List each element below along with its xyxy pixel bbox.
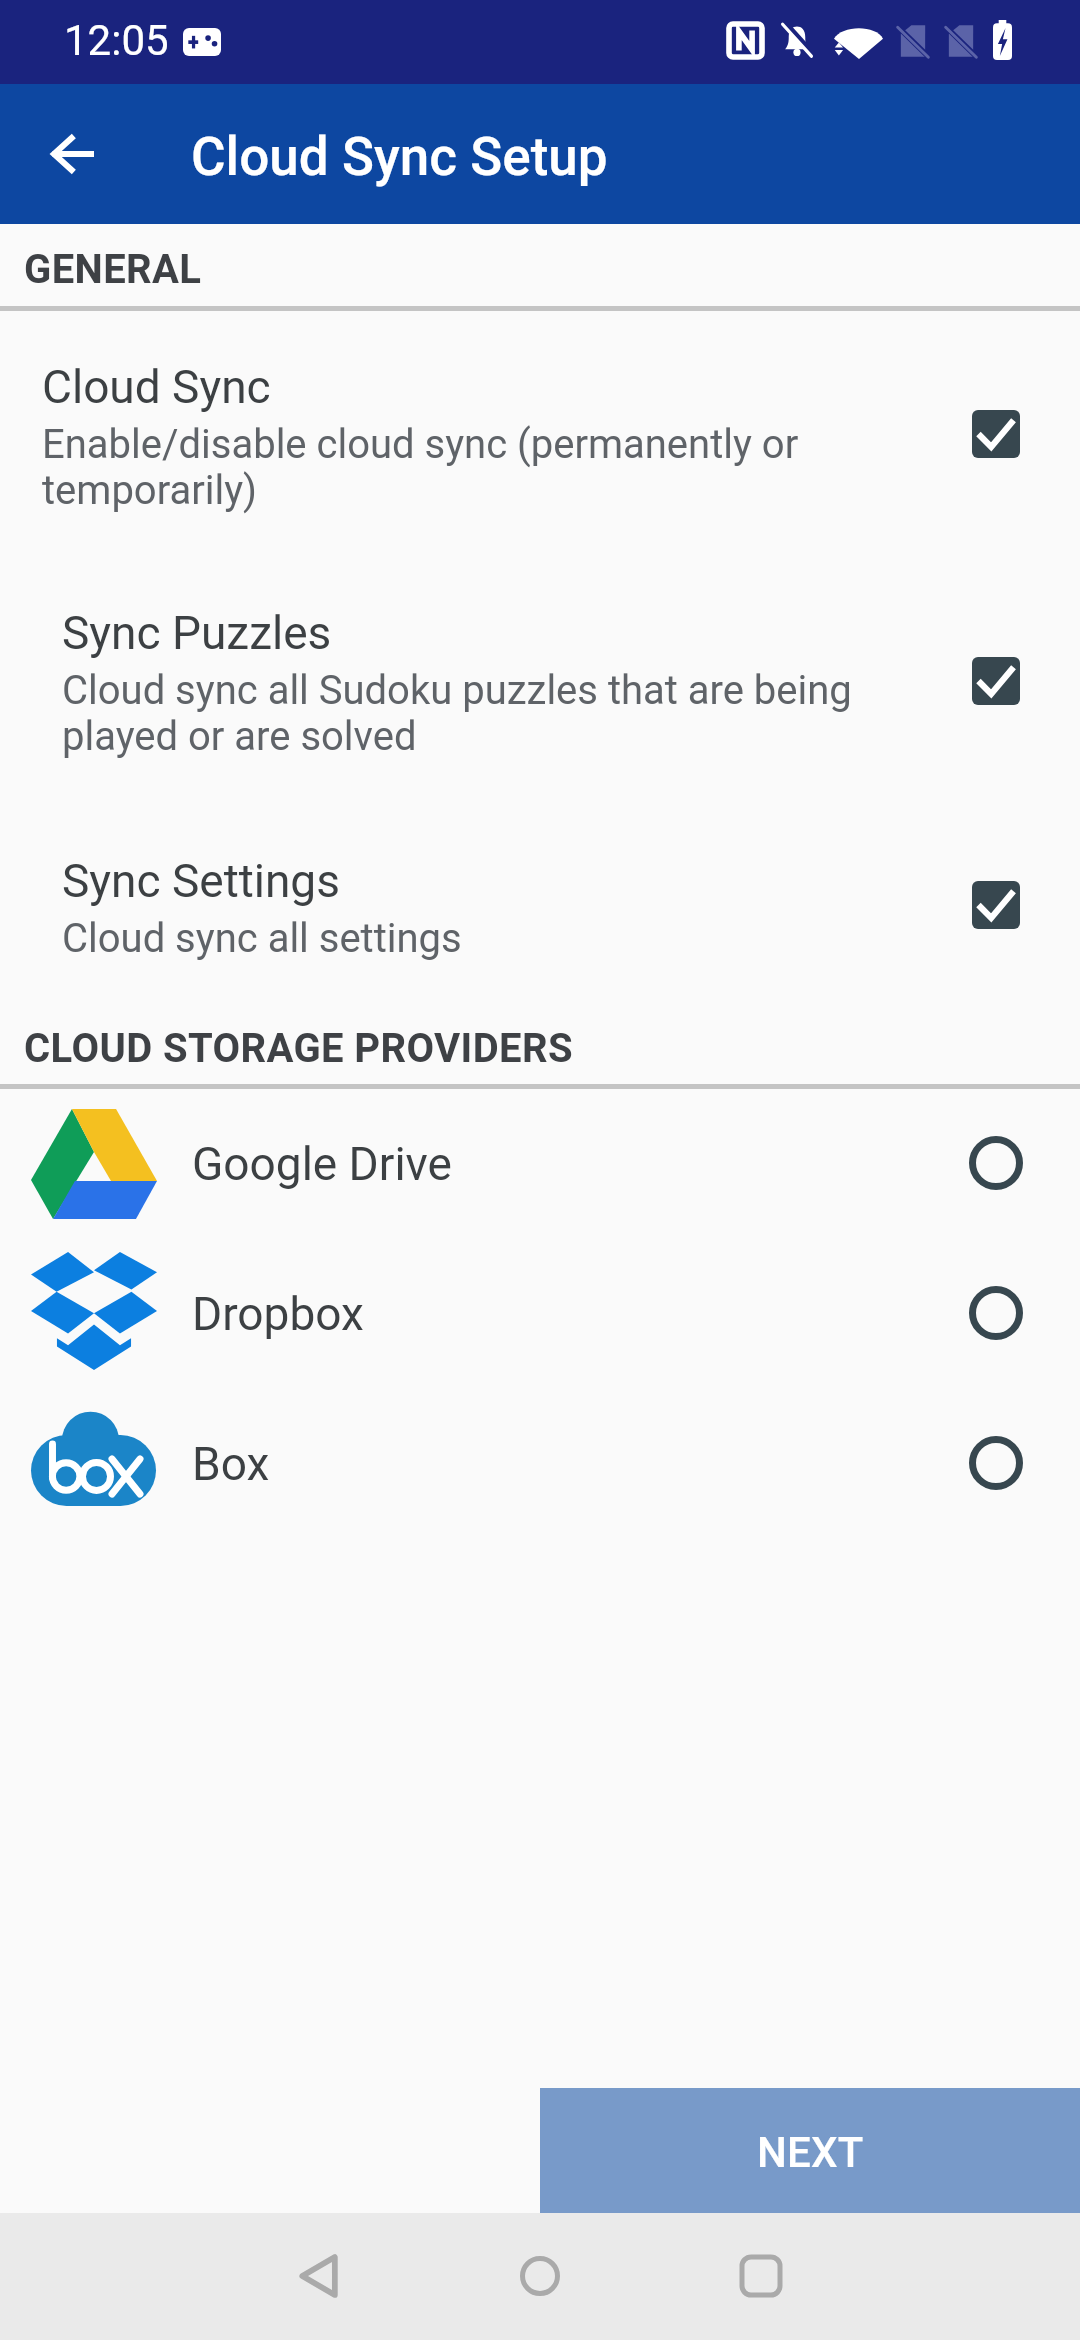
button[interactable]: Toggle Sync Puzzles — [960, 645, 1032, 717]
staticText: Dropbox — [192, 1287, 364, 1341]
button[interactable]: Back — [25, 106, 121, 202]
staticText: Cloud Sync Setup — [191, 126, 608, 188]
button[interactable]: Cloud Sync — [0, 320, 1080, 530]
staticText: NEXT — [757, 2128, 864, 2177]
staticText: Cloud sync all Sudoku puzzles that are b… — [62, 667, 852, 714]
staticText: Cloud sync all settings — [62, 915, 462, 962]
staticText: GENERAL — [24, 246, 202, 293]
button[interactable]: Home — [480, 2216, 600, 2336]
button[interactable]: Recents — [701, 2216, 821, 2336]
button[interactable]: Select Google Drive — [960, 1127, 1032, 1199]
staticText: 12:05 — [64, 16, 169, 65]
button[interactable]: Toggle Sync Settings — [960, 869, 1032, 941]
staticText: Cloud Sync — [42, 360, 271, 414]
staticText: Google Drive — [192, 1137, 452, 1191]
button[interactable]: Sync Puzzles — [0, 566, 1080, 776]
button[interactable]: NEXT — [540, 2088, 1080, 2213]
button[interactable]: Box — [0, 1392, 1080, 1542]
button[interactable]: Back — [259, 2216, 379, 2336]
button[interactable]: Sync Settings — [0, 818, 1080, 980]
button[interactable]: Toggle Cloud Sync — [960, 398, 1032, 470]
staticText: Sync Settings — [62, 854, 340, 908]
staticText: temporarily) — [42, 467, 258, 514]
staticText: Sync Puzzles — [62, 606, 332, 660]
staticText: Enable/disable cloud sync (permanently o… — [42, 421, 799, 468]
button[interactable]: Dropbox — [0, 1242, 1080, 1392]
staticText: CLOUD STORAGE PROVIDERS — [24, 1025, 573, 1072]
button[interactable]: Select Box — [960, 1427, 1032, 1499]
staticText: played or are solved — [62, 713, 417, 760]
button[interactable]: Select Dropbox — [960, 1277, 1032, 1349]
staticText: Box — [192, 1437, 270, 1491]
button[interactable]: Google Drive — [0, 1092, 1080, 1242]
